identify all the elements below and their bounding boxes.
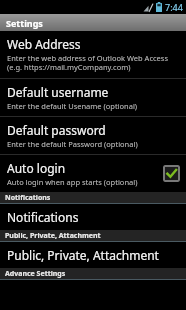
staticText: Auto login when app starts (optional) [7,177,138,187]
staticText: Enter the default Password (optional) [7,139,138,149]
button[interactable]: Public, Private, Attachment [0,242,186,268]
staticText: Auto login [7,160,66,176]
button[interactable]: Auto login toggle [163,165,180,182]
button[interactable]: Web Address [0,31,186,78]
staticText: 7:44 [165,1,183,13]
button[interactable]: Default username [0,79,186,116]
staticText: Public, Private, Attachment [7,247,159,263]
staticText: Public, Private, Attachment [5,231,101,241]
button[interactable]: Notifications [0,204,186,230]
staticText: Default username [7,84,109,100]
staticText: Enter the web address of Outlook Web Acc… [7,53,169,73]
staticText: Enter the default Usename (optional) [7,101,138,111]
staticText: Web Address [7,36,81,52]
staticText: Settings [6,17,43,29]
button[interactable]: Auto login [0,155,186,192]
staticText: Notifications [7,209,79,225]
staticText: Default password [7,122,106,138]
staticText: Advance Settings [5,269,66,279]
staticText: Notifications [5,193,51,203]
button[interactable]: Default password [0,117,186,154]
